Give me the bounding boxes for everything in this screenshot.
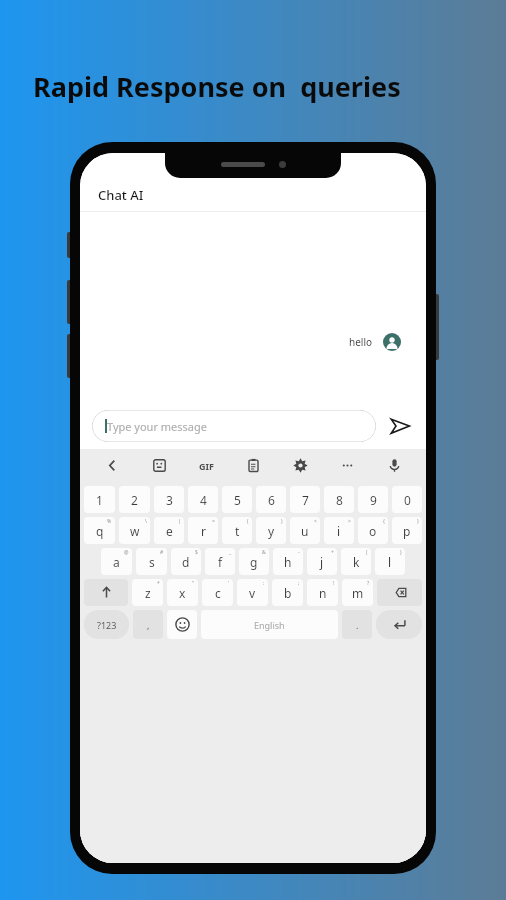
staticText: g	[250, 554, 258, 570]
staticText: a	[113, 554, 120, 570]
button[interactable]: v	[237, 579, 268, 606]
button[interactable]: d	[171, 548, 201, 575]
button[interactable]: s	[136, 548, 167, 575]
staticText: ?123	[97, 619, 117, 631]
button[interactable]: 3	[154, 486, 184, 513]
button[interactable]: x	[167, 579, 198, 606]
staticText: >	[348, 518, 351, 525]
staticText: 8	[336, 492, 343, 508]
button[interactable]: .	[342, 610, 372, 639]
button[interactable]: Emoji	[167, 610, 197, 639]
button[interactable]: o	[358, 517, 388, 544]
staticText: <	[314, 518, 317, 525]
button[interactable]: m	[342, 579, 373, 606]
button[interactable]: 2	[119, 486, 150, 513]
staticText: !	[333, 580, 335, 587]
button[interactable]: q	[84, 517, 115, 544]
button[interactable]: r	[188, 517, 218, 544]
staticText: j	[320, 554, 324, 570]
button[interactable]: Voice input	[371, 458, 418, 473]
button[interactable]: g	[239, 548, 269, 575]
button[interactable]: y	[256, 517, 286, 544]
button[interactable]: j	[307, 548, 337, 575]
button[interactable]: Send	[386, 412, 414, 440]
staticText: {	[383, 518, 385, 525]
staticText: b	[284, 585, 292, 601]
staticText: (	[366, 549, 368, 556]
staticText: (	[247, 518, 249, 525]
button[interactable]: p	[392, 517, 422, 544]
staticText: -	[298, 549, 300, 556]
staticText: v	[249, 585, 256, 601]
staticText: English	[254, 619, 285, 631]
button[interactable]: 4	[188, 486, 218, 513]
button[interactable]: Shift	[84, 579, 128, 606]
button[interactable]: h	[273, 548, 303, 575]
staticText: z	[145, 585, 151, 601]
button[interactable]: ?123	[84, 610, 129, 639]
staticText: u	[301, 523, 309, 539]
button[interactable]: 0	[392, 486, 422, 513]
button[interactable]: i	[324, 517, 354, 544]
button[interactable]: f	[205, 548, 235, 575]
staticText: +	[331, 549, 334, 556]
button[interactable]: More	[324, 458, 371, 473]
button[interactable]: GIF	[183, 460, 230, 472]
button[interactable]: 7	[290, 486, 320, 513]
staticText: GIF	[199, 460, 214, 472]
staticText: @	[124, 549, 129, 556]
staticText: 5	[234, 492, 241, 508]
staticText: i	[337, 523, 341, 539]
staticText: ,	[147, 619, 150, 631]
staticText: }	[417, 518, 419, 525]
button[interactable]: Type your message	[92, 410, 376, 442]
button[interactable]: Enter	[376, 610, 422, 639]
staticText: '	[228, 580, 230, 587]
staticText: "	[192, 580, 195, 587]
button[interactable]: Clipboard	[230, 458, 277, 473]
button[interactable]: 6	[256, 486, 286, 513]
staticText: Type your message	[107, 419, 207, 434]
button[interactable]: 1	[84, 486, 115, 513]
button[interactable]: z	[132, 579, 163, 606]
button[interactable]: Stickers	[136, 458, 183, 473]
staticText: f	[218, 554, 223, 570]
button[interactable]: 5	[222, 486, 252, 513]
staticText: r	[201, 523, 206, 539]
button[interactable]: b	[272, 579, 303, 606]
button[interactable]: k	[341, 548, 371, 575]
button[interactable]: English	[201, 610, 338, 639]
button[interactable]: t	[222, 517, 252, 544]
button[interactable]: Settings	[277, 458, 324, 473]
button[interactable]: l	[375, 548, 405, 575]
staticText: l	[388, 554, 392, 570]
button[interactable]: w	[119, 517, 150, 544]
button[interactable]: e	[154, 517, 184, 544]
staticText: ;	[298, 580, 300, 587]
staticText: m	[352, 585, 364, 601]
staticText: =	[212, 518, 215, 525]
button[interactable]: Back	[88, 458, 136, 473]
button[interactable]: a	[101, 548, 132, 575]
button[interactable]: c	[202, 579, 233, 606]
staticText: &	[262, 549, 266, 556]
staticText: p	[403, 523, 411, 539]
button[interactable]: hello	[338, 325, 412, 359]
staticText: $	[195, 549, 198, 556]
staticText: 9	[370, 492, 377, 508]
staticText: Rapid Response on queries	[33, 68, 401, 105]
button[interactable]: Backspace	[377, 579, 422, 606]
button[interactable]: 9	[358, 486, 388, 513]
staticText: y	[268, 523, 275, 539]
staticText: \	[145, 518, 147, 525]
staticText: %	[107, 518, 112, 525]
staticText: hello	[349, 335, 373, 349]
button[interactable]: ,	[133, 610, 163, 639]
button[interactable]: 8	[324, 486, 354, 513]
staticText: w	[130, 523, 140, 539]
button[interactable]: n	[307, 579, 338, 606]
button[interactable]: u	[290, 517, 320, 544]
staticText: 7	[302, 492, 309, 508]
staticText: e	[166, 523, 173, 539]
